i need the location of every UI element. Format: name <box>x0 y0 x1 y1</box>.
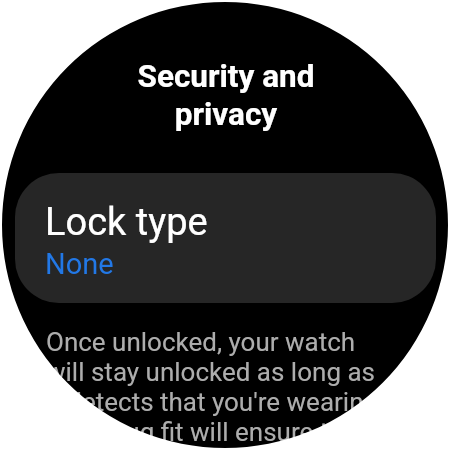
button[interactable]: Lock type <box>15 173 436 303</box>
staticText: Security and privacy <box>101 58 351 133</box>
staticText: Once unlocked, your watch will stay unlo… <box>46 327 386 450</box>
staticText: Lock type <box>45 200 208 245</box>
staticText: None <box>45 247 114 281</box>
